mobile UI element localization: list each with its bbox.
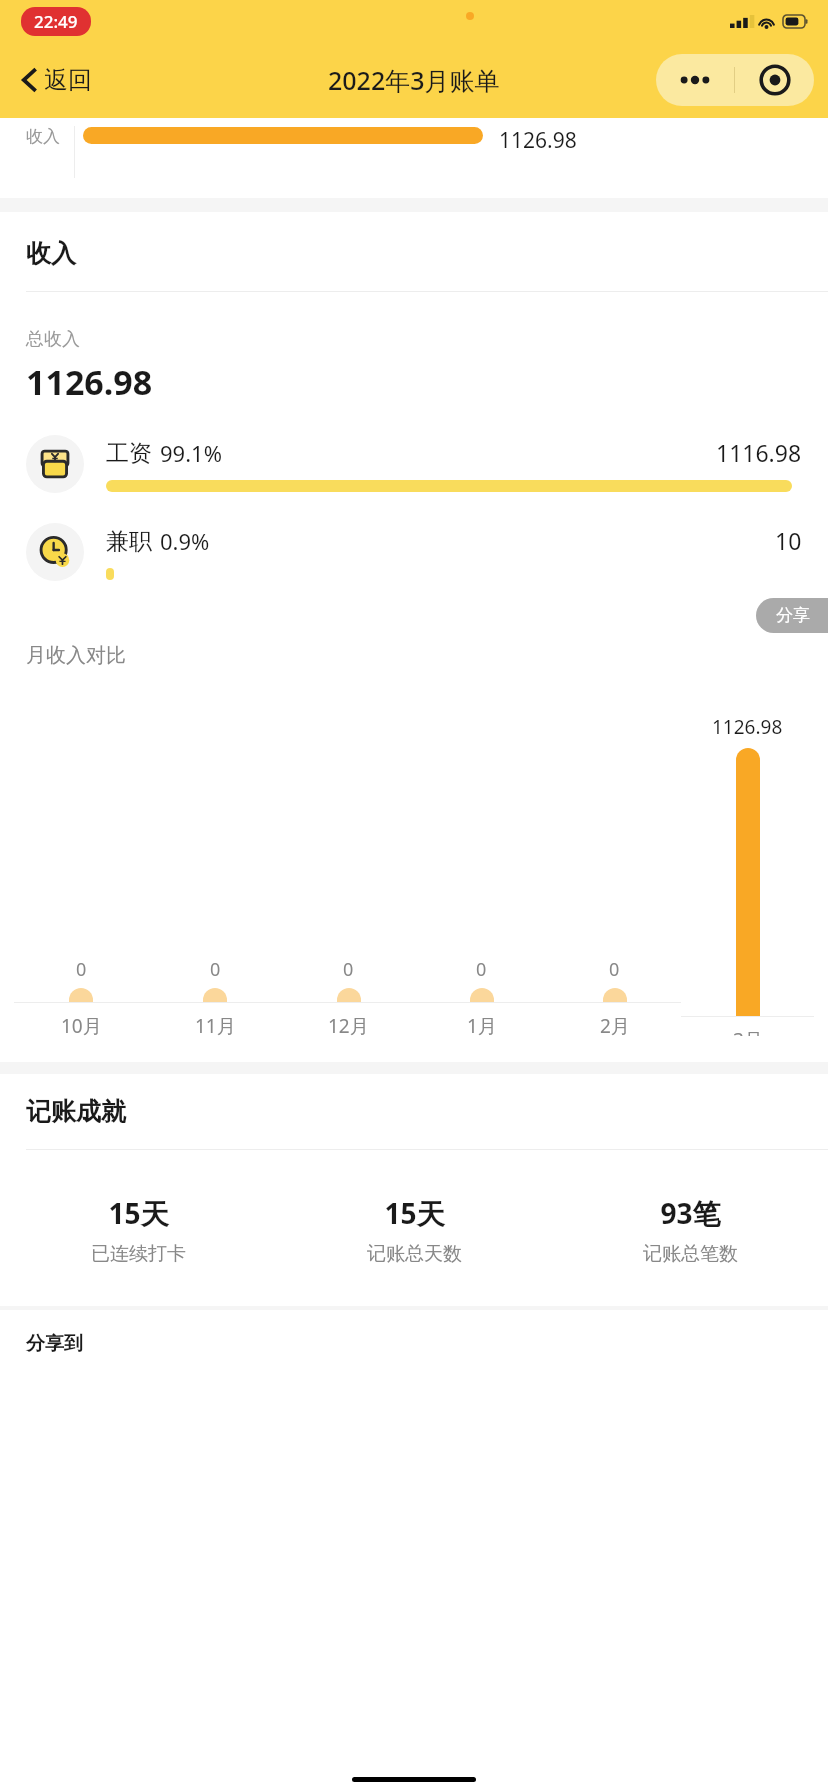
- staticText: 分享: [776, 605, 810, 626]
- staticText: 返回: [44, 65, 92, 95]
- staticText: 93笔: [660, 1194, 721, 1232]
- button[interactable]: 15天: [276, 1194, 552, 1266]
- staticText: 0: [210, 957, 221, 982]
- staticText: 已连续打卡: [91, 1242, 186, 1266]
- staticText: 1126.98: [712, 714, 783, 740]
- staticText: 15天: [108, 1194, 169, 1232]
- staticText: 15天: [384, 1194, 445, 1232]
- staticText: 总收入: [26, 328, 80, 351]
- staticText: 工资: [106, 439, 152, 468]
- button[interactable]: 93笔: [552, 1194, 828, 1266]
- staticText: 12月: [328, 1013, 369, 1036]
- button[interactable]: 分享: [756, 598, 828, 633]
- staticText: 10: [775, 525, 802, 556]
- staticText: 22:49: [34, 10, 78, 33]
- button[interactable]: 工资: [0, 435, 828, 493]
- button[interactable]: 返回: [18, 65, 92, 95]
- staticText: 11月: [195, 1013, 236, 1036]
- staticText: 0: [476, 957, 487, 982]
- staticText: 0: [343, 957, 354, 982]
- staticText: 记账总笔数: [643, 1242, 738, 1266]
- button[interactable]: Close: [735, 54, 814, 106]
- staticText: 收入: [26, 126, 60, 147]
- staticText: 2022年3月账单: [328, 63, 500, 97]
- staticText: 兼职: [106, 527, 152, 556]
- staticText: 收入: [26, 238, 76, 269]
- staticText: 1126.98: [499, 126, 577, 155]
- button[interactable]: More: [656, 54, 734, 106]
- staticText: 记账成就: [26, 1096, 126, 1127]
- staticText: 2月: [600, 1013, 630, 1036]
- staticText: 月收入对比: [26, 643, 126, 668]
- staticText: 3月: [733, 1027, 763, 1036]
- staticText: 99.1%: [160, 438, 222, 468]
- staticText: 记账总天数: [367, 1242, 462, 1266]
- staticText: 1126.98: [26, 359, 153, 405]
- staticText: 分享到: [26, 1332, 83, 1356]
- staticText: 0: [609, 957, 620, 982]
- staticText: 0: [76, 957, 87, 982]
- staticText: 0.9%: [160, 526, 210, 556]
- staticText: 1月: [467, 1013, 497, 1036]
- staticText: 10月: [61, 1013, 102, 1036]
- button[interactable]: 兼职: [0, 523, 828, 581]
- button[interactable]: 15天: [0, 1194, 276, 1266]
- staticText: 1116.98: [716, 437, 802, 468]
